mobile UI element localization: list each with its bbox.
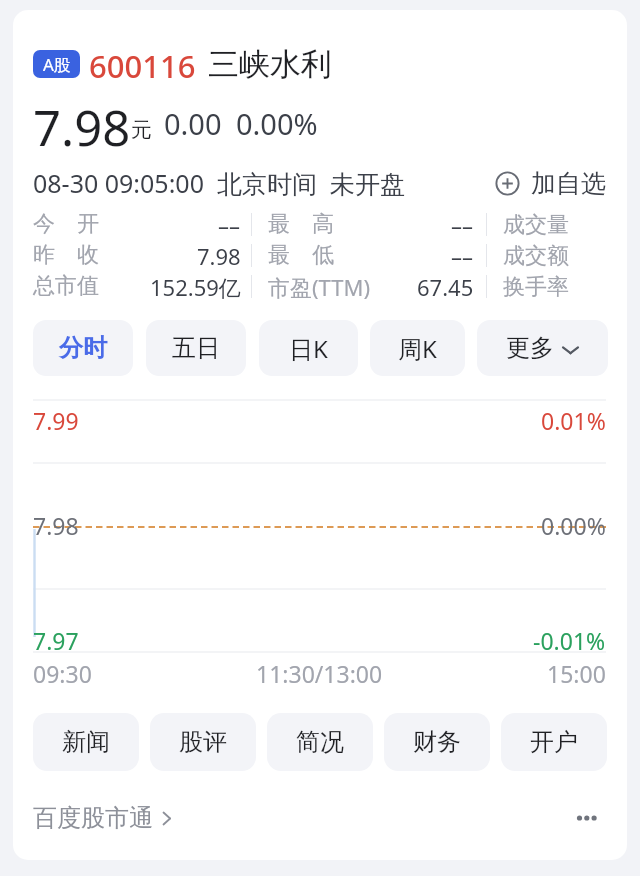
staticText: –– [451,210,474,240]
staticText: 开户 [530,727,578,757]
button[interactable]: More options [570,801,604,835]
staticText: 更多 [506,333,554,363]
staticText: 市盈(TTM) [268,272,371,302]
staticText: 15:00 [547,658,606,689]
staticText: 新闻 [62,727,110,757]
staticText: 0.00% [236,104,318,143]
staticText: 财务 [413,727,461,757]
staticText: –– [218,210,241,240]
button[interactable]: 五日 [146,320,246,376]
button[interactable]: 简况 [267,713,373,771]
staticText: 简况 [296,727,344,757]
staticText: A股 [43,53,71,76]
staticText: 0.01% [541,405,606,436]
staticText: 周K [398,332,437,365]
staticText: 67.45 [417,272,474,302]
button[interactable]: 新闻 [33,713,139,771]
staticText: 7.98 [33,94,131,150]
staticText: 换手率 [503,273,569,301]
staticText: 152.59亿 [150,272,241,302]
staticText: 加自选 [531,168,606,199]
staticText: 7.98 [33,510,79,541]
staticText: 三峡水利 [208,45,332,81]
staticText: 11:30/13:00 [256,658,383,689]
button[interactable]: 财务 [384,713,490,771]
staticText: 股评 [179,727,227,757]
staticText: 百度股市通 [33,803,153,833]
staticText: 最 [268,241,290,269]
staticText: –– [451,241,474,271]
button[interactable]: 百度股市通 [33,803,174,833]
staticText: 低 [312,241,334,269]
staticText: -0.01% [533,625,606,656]
staticText: 总市值 [33,272,99,300]
staticText: 成交量 [503,211,569,239]
staticText: 分时 [59,333,107,363]
staticText: 600116 [89,45,196,81]
staticText: 09:30 [33,658,92,689]
staticText: 日K [289,332,328,365]
staticText: 0.00 [164,104,222,143]
staticText: 开 [77,210,99,238]
button[interactable]: 周K [370,320,465,376]
staticText: 最 [268,210,290,238]
button[interactable]: 分时 [33,320,133,376]
staticText: 元 [131,117,152,143]
staticText: 收 [77,241,99,269]
staticText: 0.00% [541,510,606,541]
staticText: 7.97 [33,625,79,656]
staticText: 7.98 [197,241,241,271]
staticText: 今 [33,210,55,238]
staticText: 08-30 09:05:00 北京时间 未开盘 [33,166,405,200]
staticText: 五日 [172,333,220,363]
button[interactable]: 日K [259,320,358,376]
staticText: 7.99 [33,405,79,436]
staticText: 成交额 [503,242,569,270]
button[interactable]: 开户 [501,713,607,771]
staticText: 昨 [33,241,55,269]
button[interactable]: 股评 [150,713,256,771]
button[interactable]: 更多 [477,320,608,376]
button[interactable]: 加自选 [495,168,606,199]
staticText: 高 [312,210,334,238]
